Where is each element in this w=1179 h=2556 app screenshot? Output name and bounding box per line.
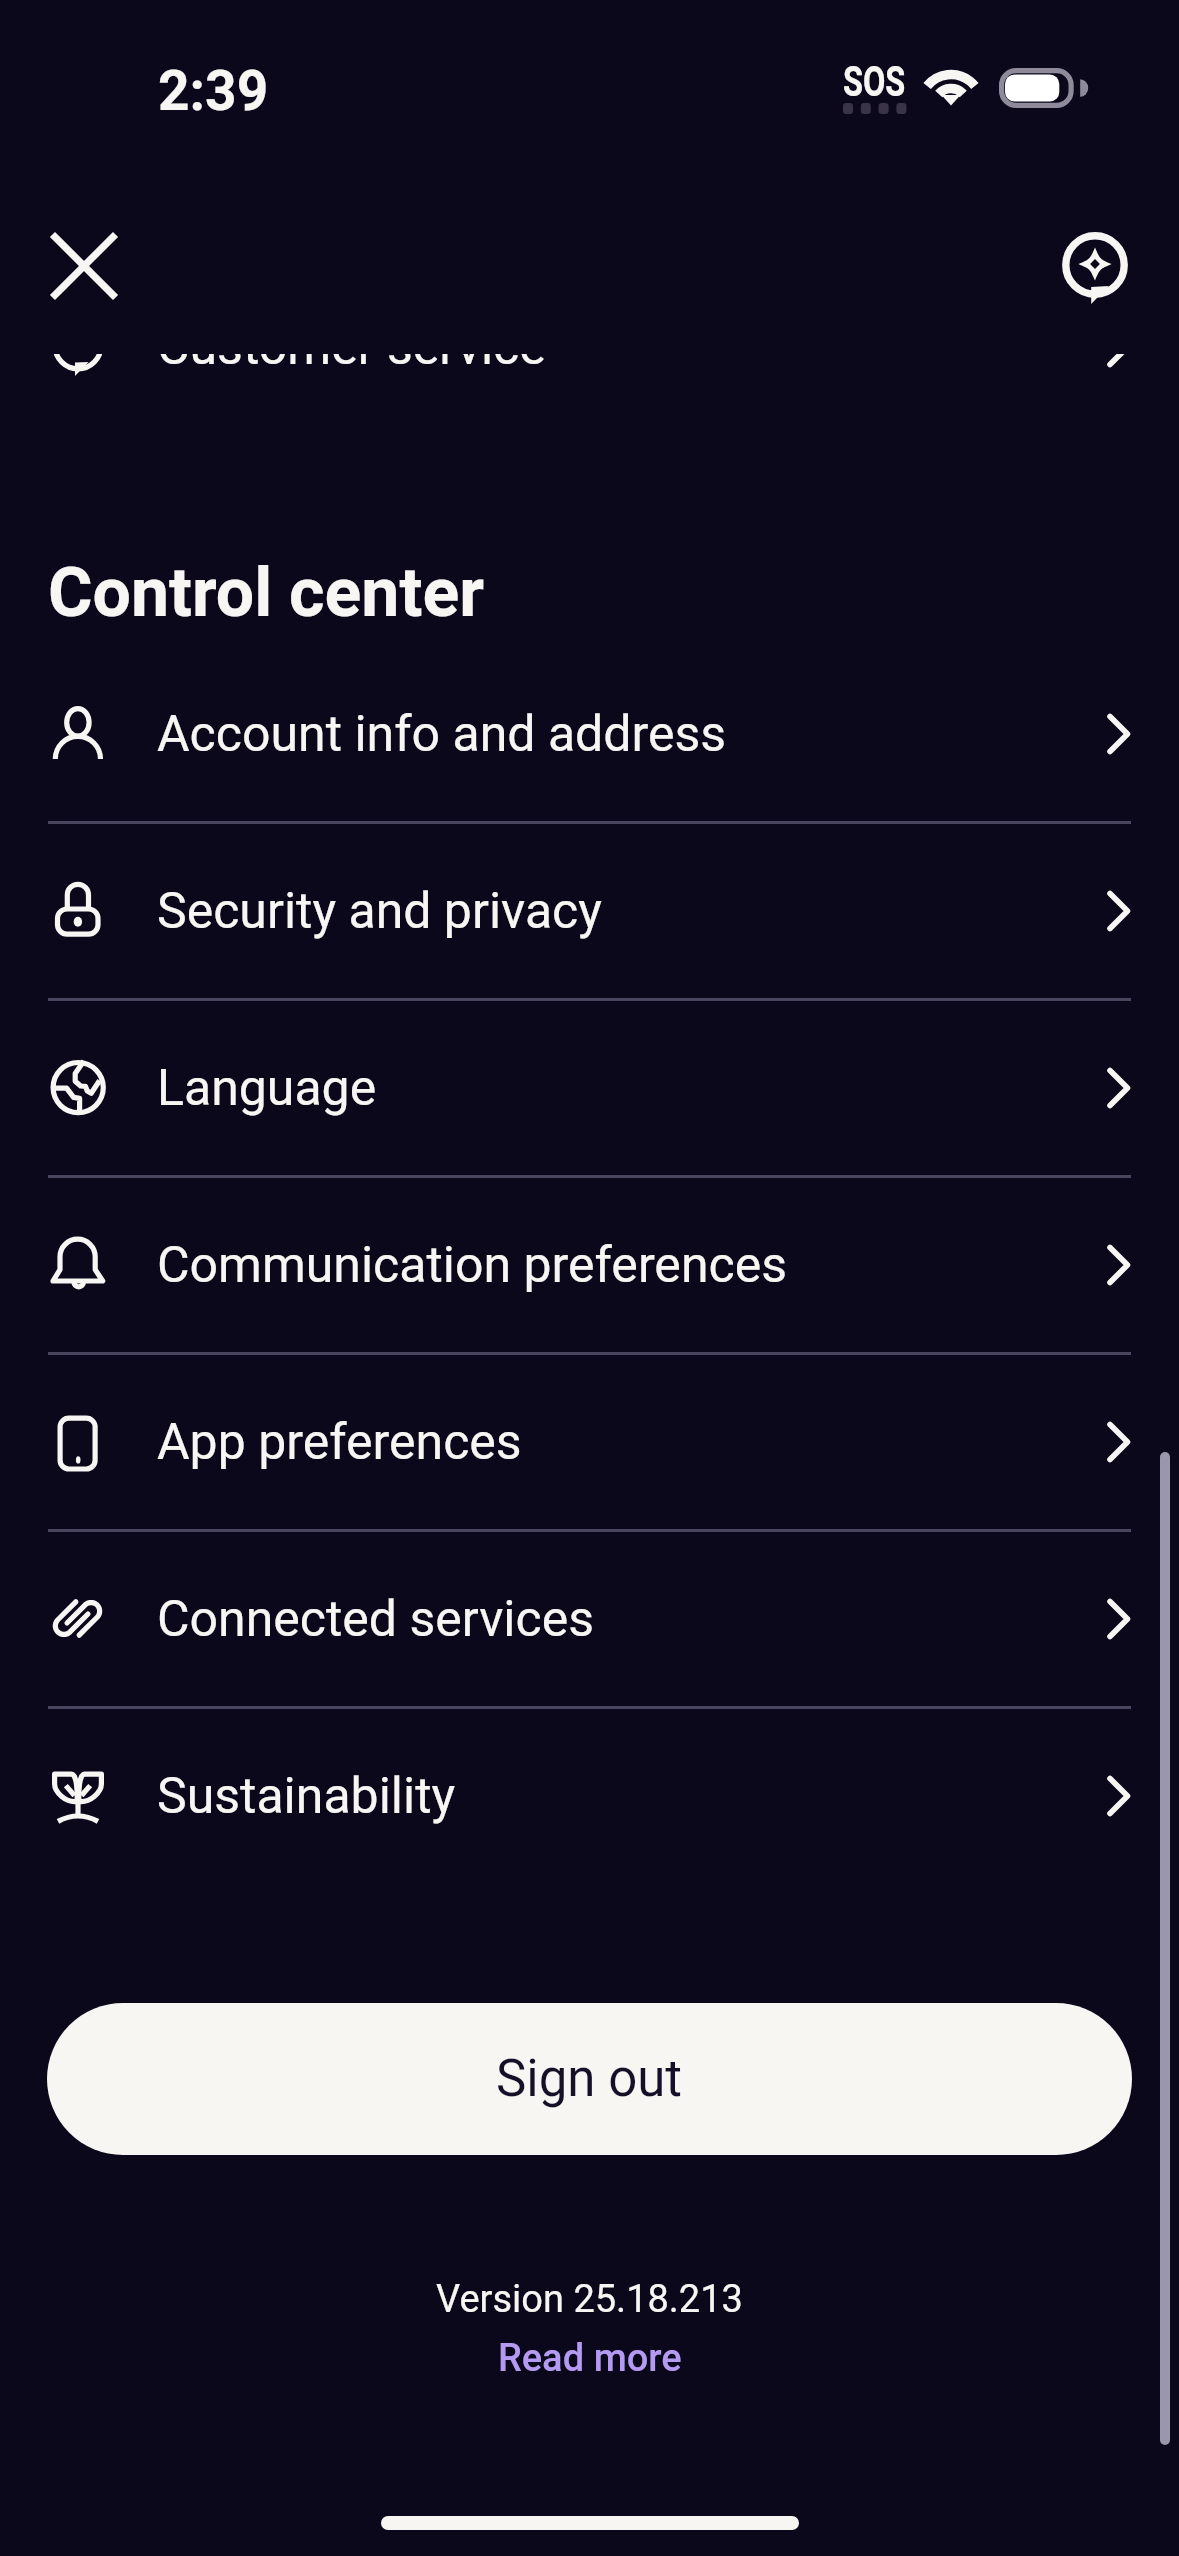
button[interactable]: Assistant [1041,211,1149,319]
button[interactable]: Account info and address [0,647,1179,821]
staticText: Communication preferences [157,1236,787,1295]
staticText: Sign out [496,2049,683,2109]
staticText: SOS [843,56,906,106]
staticText: Customer service [157,318,546,377]
staticText: Version 25.18.213 [0,2277,1179,2322]
staticText: Security and privacy [157,882,602,941]
button[interactable]: Language [0,1001,1179,1175]
staticText: App preferences [157,1413,522,1472]
button[interactable]: Read more [0,2336,1179,2381]
staticText: Control center [48,553,484,633]
staticText: 2:39 [158,59,269,123]
button[interactable]: Connected services [0,1532,1179,1706]
staticText: Read more [498,2336,682,2381]
button[interactable]: Sustainability [0,1709,1179,1883]
staticText: Account info and address [157,705,727,764]
staticText: Language [157,1059,377,1118]
staticText: Connected services [157,1590,595,1649]
button[interactable]: Close [30,212,138,320]
button[interactable]: Security and privacy [0,824,1179,998]
button[interactable]: Customer service [0,260,1179,434]
button[interactable]: Sign out [47,2003,1132,2155]
button[interactable]: Communication preferences [0,1178,1179,1352]
staticText: Sustainability [157,1767,456,1826]
button[interactable]: App preferences [0,1355,1179,1529]
